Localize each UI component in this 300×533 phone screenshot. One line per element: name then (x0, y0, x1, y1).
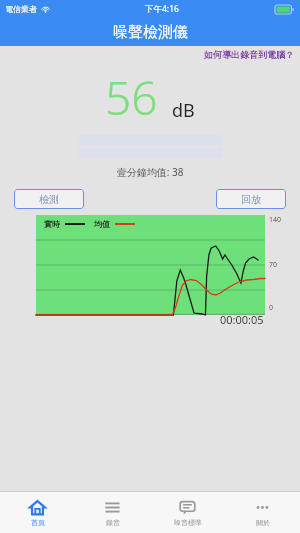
button[interactable]: 噪音標準 (150, 492, 225, 533)
button[interactable]: 檢測 (14, 189, 84, 209)
staticText: 56 (105, 66, 158, 129)
staticText: 噪聲檢測儀 (113, 23, 188, 42)
staticText: 00:00:05 (220, 312, 264, 327)
button[interactable]: 首頁 (0, 492, 75, 533)
staticText: 140 (269, 215, 282, 225)
staticText: 如何導出錄音到電腦？ (204, 49, 294, 60)
staticText: 電信業者 (5, 4, 37, 14)
staticText: dB (172, 98, 195, 123)
staticText: 檢測 (39, 193, 59, 206)
button[interactable]: 關於 (225, 492, 300, 533)
staticText: 均值 (94, 219, 110, 229)
staticText: 0 (269, 303, 274, 313)
staticText: 首頁 (31, 518, 45, 527)
staticText: 關於 (256, 518, 270, 527)
staticText: 下午4:16 (145, 3, 179, 15)
button[interactable]: 如何導出錄音到電腦？ (204, 49, 300, 60)
staticText: 實時 (44, 219, 60, 229)
staticText: 錄音 (106, 518, 120, 527)
button[interactable]: 錄音 (75, 492, 150, 533)
staticText: 壹分鐘均值: 38 (0, 165, 300, 179)
staticText: 噪音標準 (174, 518, 202, 527)
button[interactable]: 回放 (216, 189, 286, 209)
staticText: 70 (269, 260, 278, 270)
staticText: 回放 (241, 193, 261, 206)
